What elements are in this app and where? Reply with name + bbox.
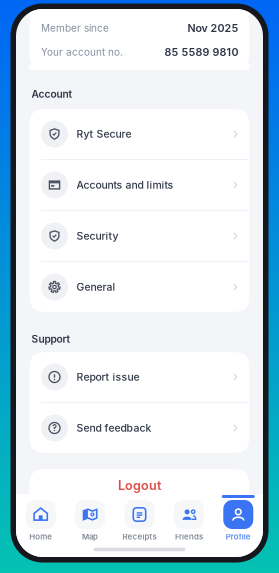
staticText: Report issue — [76, 371, 139, 383]
staticText: Map — [82, 532, 98, 541]
staticText: Friends — [175, 532, 203, 541]
staticText: Profile — [226, 532, 251, 541]
button[interactable]: Profile — [214, 494, 263, 549]
staticText: Your account no. — [41, 46, 123, 58]
staticText: Receipts — [122, 532, 156, 541]
button[interactable]: Ryt Secure — [29, 109, 249, 159]
button[interactable]: Map — [65, 494, 115, 549]
button[interactable]: Friends — [164, 494, 214, 549]
staticText: Security — [76, 230, 118, 242]
button[interactable]: Home — [16, 494, 65, 549]
button[interactable]: Accounts and limits — [29, 160, 249, 210]
staticText: Account — [31, 88, 72, 100]
staticText: Send feedback — [76, 422, 151, 434]
staticText: General — [76, 281, 115, 293]
staticText: Ryt Secure — [76, 128, 131, 140]
button[interactable]: Send feedback — [29, 403, 249, 453]
staticText: Logout — [118, 478, 161, 493]
staticText: Home — [29, 532, 52, 541]
button[interactable]: Receipts — [115, 494, 164, 549]
staticText: Support — [31, 333, 70, 345]
staticText: Accounts and limits — [76, 179, 173, 191]
button[interactable]: Logout — [29, 469, 249, 519]
staticText: Nov 2025 — [187, 21, 238, 34]
staticText: Member since — [41, 22, 109, 34]
button[interactable]: Security — [29, 211, 249, 261]
staticText: 85 5589 9810 — [164, 45, 238, 58]
button[interactable]: General — [29, 262, 249, 312]
button[interactable]: Report issue — [29, 352, 249, 402]
